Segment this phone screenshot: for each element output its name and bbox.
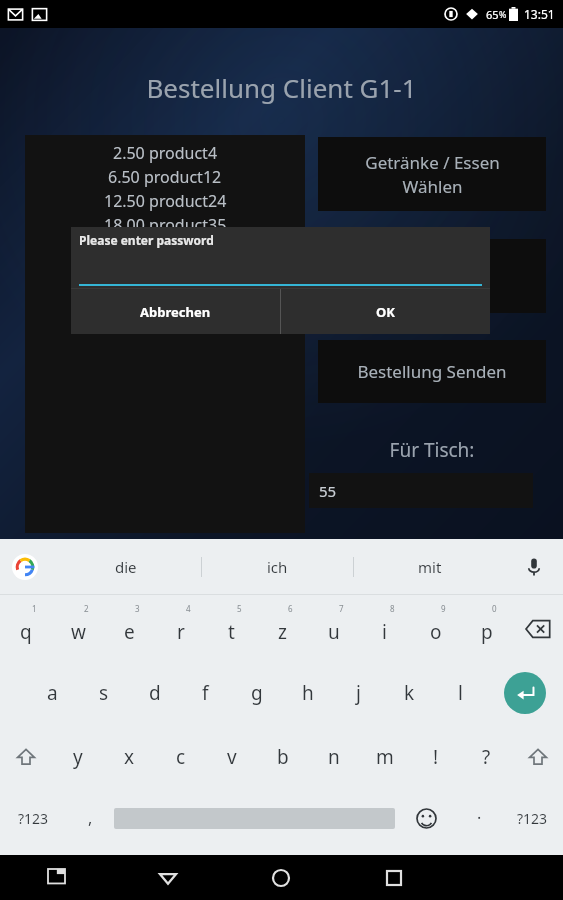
staticText: t [228,619,235,645]
button[interactable]: 2.50 product4 [25,135,305,533]
staticText: Bestellung Client G1-1 [0,70,563,105]
button[interactable]: 7 [308,597,359,661]
button[interactable]: Abbrechen [71,289,280,334]
button[interactable]: 5 [206,597,257,661]
staticText: c [176,744,186,770]
button[interactable]: Shift [512,725,563,789]
button[interactable]: ich [202,539,353,594]
button[interactable]: x [104,725,155,789]
staticText: ich [267,557,288,577]
button[interactable]: 9 [410,597,461,661]
staticText: m [376,744,394,770]
button[interactable]: Back [112,855,224,900]
staticText: 7 [339,603,344,614]
button[interactable]: ? [461,725,512,789]
button[interactable]: Enter [486,661,563,725]
button[interactable]: y [52,725,104,789]
button[interactable]: 2 [52,597,104,661]
button[interactable]: Google [0,539,50,594]
button[interactable]: l [435,661,486,725]
staticText: o [430,619,442,645]
staticText: 13:51 [524,6,555,22]
button[interactable]: Emoji [395,789,457,847]
button[interactable]: 6 [257,597,308,661]
staticText: Please enter password [79,232,214,248]
button[interactable]: h [282,661,333,725]
staticText: v [227,744,237,770]
button[interactable]: g [231,661,282,725]
staticText: r [177,619,185,645]
staticText: 12.50 product24 [104,190,227,212]
button[interactable]: 3 [104,597,155,661]
button[interactable]: · [457,789,501,847]
button[interactable]: k [384,661,435,725]
staticText: z [278,619,287,645]
staticText: x [124,744,135,770]
button[interactable]: 55 [309,473,533,508]
staticText: Bezahlen [396,265,469,288]
button[interactable]: v [206,725,257,789]
button[interactable]: Getränke / Essen Wählen [318,137,546,211]
staticText: j [356,680,361,706]
staticText: 65 [486,7,499,22]
button[interactable]: d [129,661,180,725]
button[interactable]: s [78,661,129,725]
button[interactable]: die [50,539,201,594]
button[interactable]: mit [354,539,505,594]
button[interactable]: 4 [155,597,206,661]
staticText: u [328,619,340,645]
button[interactable]: Bestellung Senden [318,340,546,403]
staticText: 6.50 product12 [108,166,222,188]
staticText: 0 [492,603,497,614]
button[interactable]: c [155,725,206,789]
staticText: e [124,619,135,645]
staticText: ?123 [18,809,49,828]
button[interactable]: 1 [0,597,52,661]
button[interactable]: n [308,725,359,789]
button[interactable]: Shift [0,725,52,789]
staticText: n [328,744,340,770]
staticText: ? [482,744,491,770]
button[interactable]: Bezahlen [318,239,546,313]
staticText: · [477,807,482,829]
button[interactable]: j [333,661,384,725]
button[interactable]: 0 [461,597,512,661]
staticText: 2.50 product4 [113,142,218,164]
staticText: y [73,744,83,770]
button[interactable]: OK [281,289,490,334]
button[interactable]: m [359,725,410,789]
staticText: p [481,619,493,645]
staticText: Für Tisch: [318,437,546,463]
button[interactable]: f [180,661,231,725]
staticText: l [458,680,463,706]
button[interactable]: , [66,789,114,847]
staticText: k [404,680,415,706]
staticText: f [202,680,209,706]
staticText: die [115,557,137,577]
staticText: ?123 [517,809,548,828]
button[interactable]: a [27,661,78,725]
staticText: 6 [288,603,293,614]
button[interactable]: Voice input [505,539,563,594]
button[interactable]: ! [410,725,461,789]
button[interactable]: b [257,725,308,789]
staticText: , [88,807,93,829]
button[interactable]: Backspace [512,597,563,661]
button[interactable]: Switch keyboard [0,855,112,900]
staticText: 55 [319,481,337,501]
staticText: OK [376,303,395,321]
button[interactable]: 8 [359,597,410,661]
button[interactable]: ?123 [501,789,563,847]
button[interactable]: Home [224,855,337,900]
staticText: i [382,619,387,645]
staticText: 3 [135,603,140,614]
button[interactable]: ?123 [0,789,66,847]
staticText: 9 [441,603,446,614]
staticText: 4 [186,603,191,614]
staticText: b [277,744,289,770]
button[interactable]: Recents [337,855,450,900]
staticText: Getränke / Essen Wählen [365,151,500,198]
staticText: 18.00 product35 [104,214,227,236]
staticText: 8 [390,603,395,614]
